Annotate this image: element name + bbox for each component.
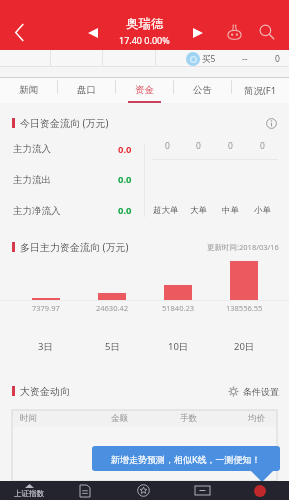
staticText: 主力流出 xyxy=(13,174,51,186)
staticText: 7379.97 xyxy=(32,303,60,313)
button[interactable]: 新增走势预测，相似K线，一测便知！ xyxy=(92,446,280,471)
button[interactable]: AI assistant xyxy=(221,19,247,45)
staticText: 3日 xyxy=(38,340,53,353)
staticText: 多日主力资金流向 (万元) xyxy=(20,240,129,254)
staticText: 0 xyxy=(228,140,233,152)
staticText: 0 xyxy=(165,140,170,152)
button[interactable]: Quote detail xyxy=(186,52,200,66)
button[interactable]: Search xyxy=(254,19,280,45)
staticText: 上证指数 xyxy=(14,489,44,498)
staticText: 奥瑞德 xyxy=(126,16,164,32)
staticText: 中单 xyxy=(222,205,239,216)
staticText: 手数 xyxy=(180,413,197,424)
staticText: 均价 xyxy=(248,413,265,424)
staticText: 买5 xyxy=(202,53,216,65)
button[interactable]: Record xyxy=(248,481,272,500)
staticText: 0.0 xyxy=(118,173,132,186)
staticText: 20日 xyxy=(234,340,255,353)
staticText: 条件设置 xyxy=(243,386,279,397)
button[interactable]: Market xyxy=(131,481,155,500)
staticText: 大单 xyxy=(190,205,207,216)
staticText: 5日 xyxy=(105,340,120,353)
staticText: 更新时间:2018/03/16 xyxy=(207,242,279,252)
staticText: 10日 xyxy=(168,340,189,353)
staticText: 0 xyxy=(196,140,201,152)
button[interactable]: Panels xyxy=(190,481,214,500)
button[interactable]: Previous stock xyxy=(83,23,103,43)
staticText: 17.40 0.00% xyxy=(119,34,170,46)
button[interactable]: 20日 xyxy=(211,322,277,370)
staticText: 0.0 xyxy=(118,143,132,156)
staticText: 主力流入 xyxy=(13,143,51,155)
staticText: 盘口 xyxy=(77,84,96,96)
staticText: 今日资金流向 (万元) xyxy=(20,116,109,130)
staticText: 0 xyxy=(260,140,265,152)
staticText: 51840.23 xyxy=(162,303,195,313)
button[interactable]: Next stock xyxy=(188,23,208,43)
staticText: -- xyxy=(242,53,248,65)
staticText: 24630.42 xyxy=(96,303,129,313)
staticText: 大资金动向 xyxy=(20,385,70,398)
button[interactable]: 盘口 xyxy=(57,77,115,103)
staticText: 0.0 xyxy=(118,204,132,217)
button[interactable]: 公告 xyxy=(173,77,231,103)
button[interactable]: 3日 xyxy=(12,322,79,370)
staticText: 0 xyxy=(275,53,280,65)
button[interactable]: 10日 xyxy=(145,322,211,370)
button[interactable]: Info xyxy=(263,115,279,131)
button[interactable]: 简况(F1 xyxy=(231,77,289,103)
staticText: 小单 xyxy=(254,205,271,216)
button[interactable]: 上证指数 xyxy=(0,481,58,500)
button[interactable]: 5日 xyxy=(79,322,145,370)
staticText: 超大单 xyxy=(153,205,179,216)
staticText: 金额 xyxy=(111,413,128,424)
staticText: 新增走势预测，相似K线，一测便知！ xyxy=(111,453,261,465)
staticText: 资金 xyxy=(135,84,154,96)
staticText: 138556.55 xyxy=(226,303,263,313)
button[interactable]: 新闻 xyxy=(0,77,57,103)
staticText: 时间 xyxy=(20,413,37,424)
staticText: 主力净流入 xyxy=(13,205,61,217)
staticText: 简况(F1 xyxy=(244,84,277,97)
button[interactable]: Documents xyxy=(73,481,97,500)
staticText: 新闻 xyxy=(19,84,38,96)
staticText: 公告 xyxy=(193,84,212,96)
button[interactable]: 条件设置 xyxy=(228,386,279,397)
button[interactable]: Back xyxy=(0,14,38,50)
button[interactable]: 资金 xyxy=(115,77,173,103)
